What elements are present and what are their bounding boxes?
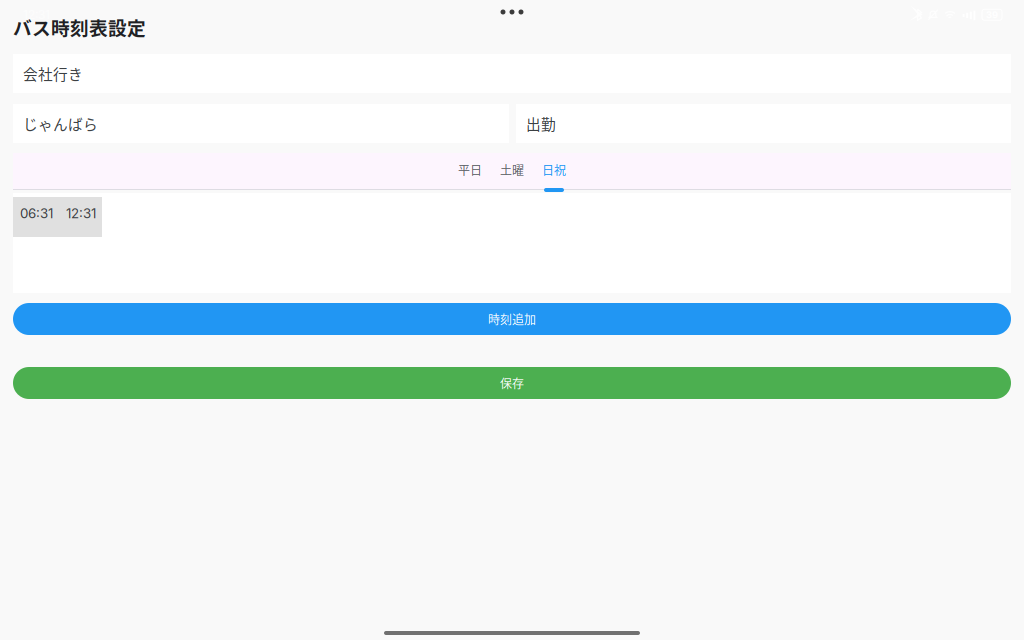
staticText: 06:31: [20, 205, 53, 221]
button[interactable]: じゃんばら: [13, 104, 509, 143]
staticText: 12:31: [23, 7, 50, 22]
button[interactable]: 06:31: [13, 197, 102, 237]
staticText: 12:31: [66, 205, 96, 221]
button[interactable]: 土曜: [501, 153, 523, 189]
button[interactable]: 時刻追加: [13, 303, 1011, 335]
button[interactable]: 保存: [13, 367, 1011, 399]
staticText: 日祝: [542, 161, 566, 178]
button[interactable]: 平日: [459, 153, 481, 189]
staticText: 保存: [500, 374, 524, 392]
button[interactable]: 会社行き: [13, 54, 1011, 93]
staticText: 時刻追加: [488, 310, 536, 328]
button[interactable]: 出勤: [516, 104, 1011, 143]
button[interactable]: 日祝: [543, 153, 565, 189]
staticText: じゃんばら: [23, 113, 98, 134]
staticText: バス時刻表設定: [13, 13, 146, 40]
button[interactable]: Multitasking options: [0, 0, 1024, 24]
staticText: 出勤: [526, 113, 556, 134]
staticText: 土曜: [500, 161, 524, 178]
staticText: 会社行き: [23, 63, 83, 84]
staticText: 平日: [458, 161, 482, 178]
